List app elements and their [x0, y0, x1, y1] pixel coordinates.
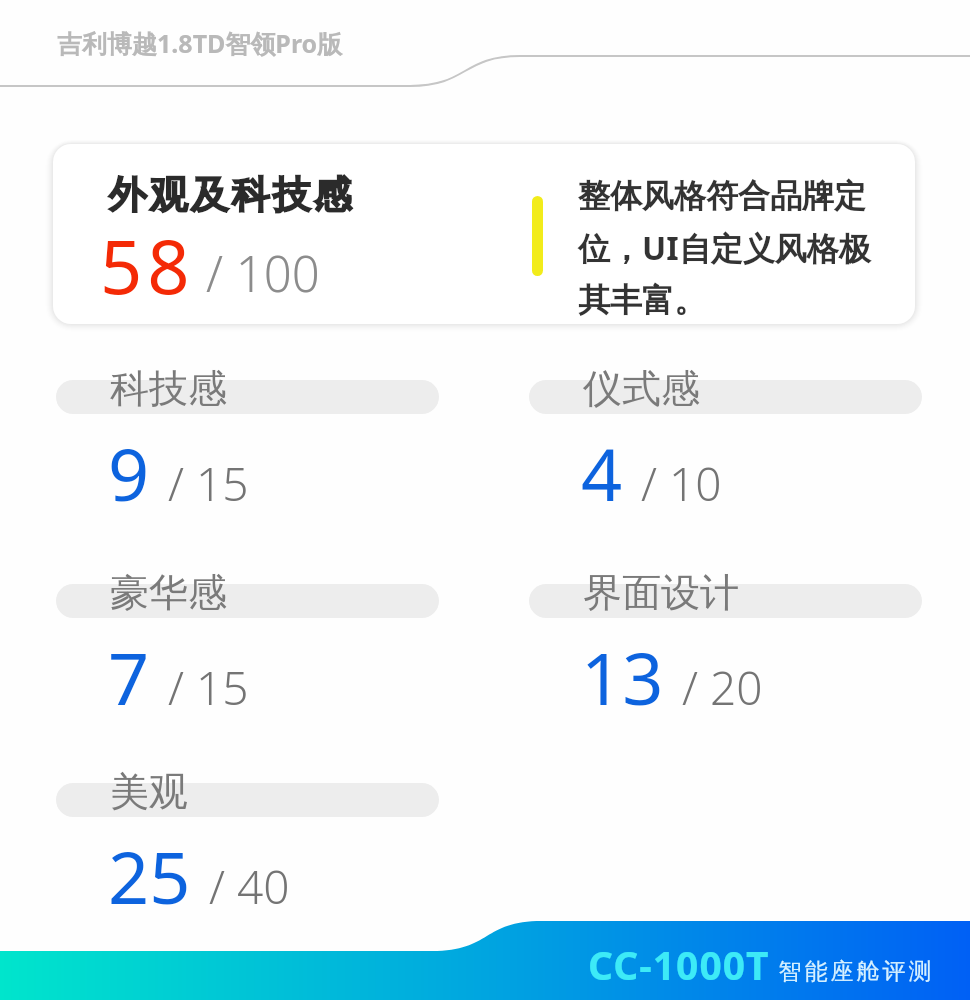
button[interactable]: 外观及科技感: [53, 144, 915, 324]
staticText: 科技感: [110, 364, 227, 413]
staticText: / 20: [682, 656, 763, 719]
button[interactable]: 界面设计 13 / 20: [529, 584, 922, 726]
staticText: / 15: [168, 656, 249, 719]
staticText: / 40: [209, 855, 290, 918]
staticText: 美观: [110, 767, 188, 816]
button[interactable]: CC-1000T: [588, 938, 970, 1000]
staticText: 界面设计: [583, 568, 739, 617]
staticText: / 100: [206, 240, 320, 307]
staticText: 仪式感: [583, 364, 700, 413]
button[interactable]: 美观 25 / 40: [56, 783, 439, 925]
staticText: 整体风格符合品牌定位，UI自定义风格极其丰富。: [578, 176, 880, 321]
staticText: 9: [108, 424, 150, 522]
staticText: 智能座舱评测: [777, 957, 933, 986]
staticText: 13: [581, 628, 664, 726]
staticText: 7: [108, 628, 150, 726]
staticText: 25: [108, 827, 191, 925]
staticText: 吉利博越1.8TD智领Pro版: [57, 26, 343, 60]
button[interactable]: 吉利博越1.8TD智领Pro版: [30, 12, 370, 74]
staticText: / 10: [641, 452, 722, 515]
staticText: 4: [581, 424, 623, 522]
staticText: 58: [100, 215, 195, 316]
staticText: CC-1000T: [588, 938, 770, 991]
button[interactable]: 仪式感 4 / 10: [529, 380, 922, 522]
staticText: / 15: [168, 452, 249, 515]
staticText: 外观及科技感: [107, 171, 353, 219]
staticText: 豪华感: [110, 568, 227, 617]
button[interactable]: 豪华感 7 / 15: [56, 584, 439, 726]
button[interactable]: 科技感 9 / 15: [56, 380, 439, 522]
